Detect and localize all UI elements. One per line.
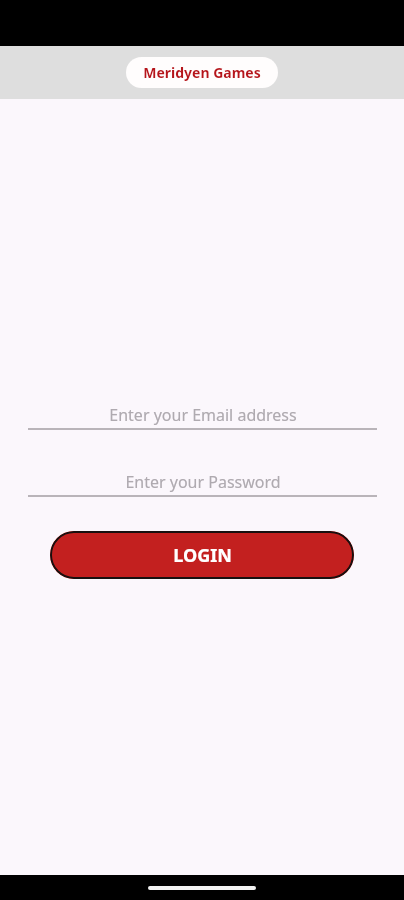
button[interactable]: Meridyen Games: [126, 57, 278, 88]
button[interactable]: LOGIN: [50, 531, 354, 579]
staticText: LOGIN: [173, 543, 232, 568]
staticText: Enter your Email address: [109, 404, 297, 426]
button[interactable]: Enter your Password: [28, 466, 377, 497]
staticText: Meridyen Games: [143, 63, 261, 82]
button[interactable]: Enter your Email address: [28, 399, 377, 430]
other: Home gesture: [148, 886, 256, 890]
staticText: Enter your Password: [125, 471, 281, 493]
